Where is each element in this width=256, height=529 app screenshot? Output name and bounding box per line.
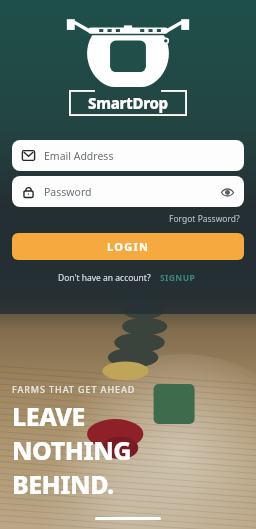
- button[interactable]: Password: [12, 176, 244, 207]
- staticText: NOTHING: [12, 433, 132, 467]
- button[interactable]: Forgot Password?: [166, 210, 243, 228]
- button[interactable]: SIGNUP: [158, 270, 198, 286]
- button[interactable]: LOGIN: [12, 233, 244, 260]
- staticText: BEHIND.: [12, 467, 114, 501]
- staticText: Password: [44, 185, 92, 199]
- staticText: Email Address: [44, 149, 114, 163]
- button[interactable]: Show password: [217, 182, 237, 202]
- staticText: Don't have an account?: [58, 272, 151, 284]
- staticText: LOGIN: [107, 239, 150, 254]
- button[interactable]: Email Address: [12, 140, 244, 171]
- staticText: Forgot Password?: [169, 213, 240, 225]
- staticText: FARMS THAT GET AHEAD: [12, 383, 136, 395]
- staticText: LEAVE: [12, 399, 85, 433]
- staticText: SIGNUP: [160, 272, 196, 284]
- staticText: SmartDrop: [88, 93, 168, 113]
